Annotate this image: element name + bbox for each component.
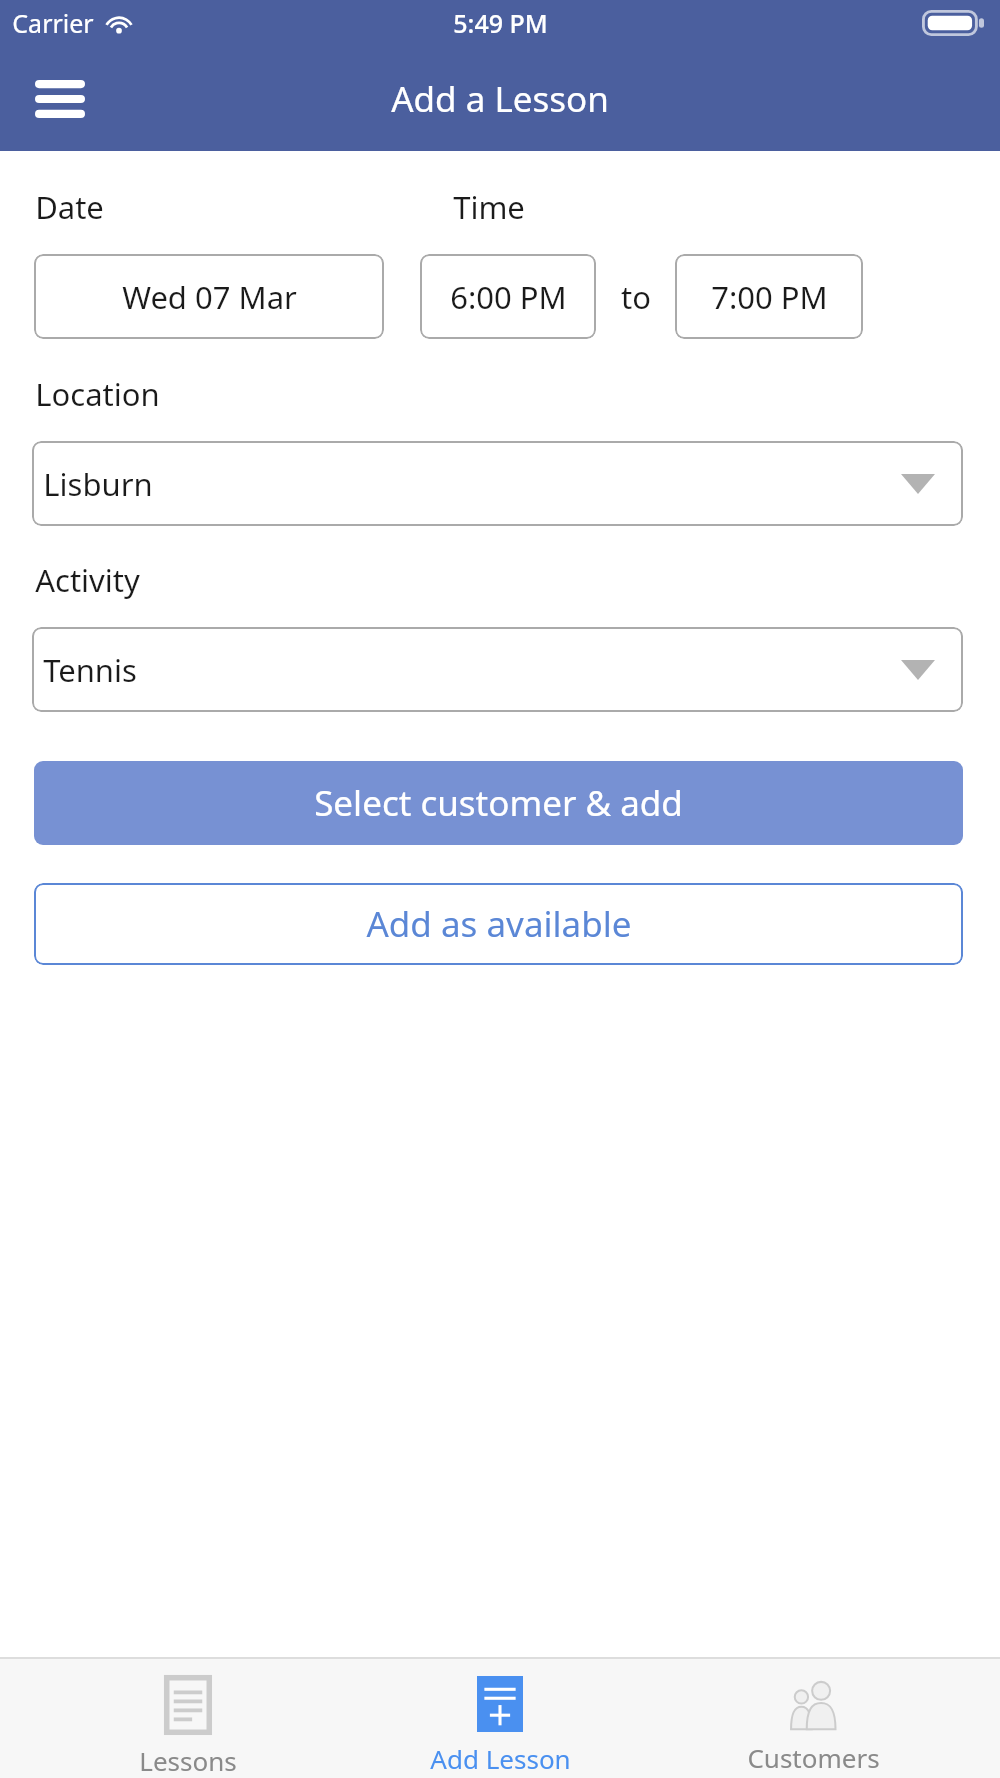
button[interactable]: Add Lesson xyxy=(375,1676,625,1776)
staticText: Date xyxy=(35,186,104,228)
button[interactable]: Customers xyxy=(688,1676,938,1775)
staticText: Carrier xyxy=(12,6,94,40)
staticText: Tennis xyxy=(43,649,137,691)
button[interactable]: Select customer & add xyxy=(34,761,963,845)
staticText: Add a Lesson xyxy=(391,75,609,123)
staticText: to xyxy=(621,276,651,318)
button[interactable]: Tennis xyxy=(32,627,963,712)
button[interactable]: Add as available xyxy=(34,883,963,965)
button[interactable]: Lisburn xyxy=(32,441,963,526)
staticText: Select customer & add xyxy=(314,779,683,827)
staticText: Wed 07 Mar xyxy=(122,276,297,318)
staticText: Add Lesson xyxy=(430,1741,571,1776)
button[interactable]: Lessons xyxy=(63,1676,313,1778)
staticText: 5:49 PM xyxy=(453,6,548,40)
staticText: Time xyxy=(453,186,525,228)
staticText: Lessons xyxy=(139,1743,237,1778)
staticText: Customers xyxy=(747,1740,880,1775)
staticText: Add as available xyxy=(366,900,632,948)
button[interactable]: Wed 07 Mar xyxy=(34,254,384,339)
staticText: 6:00 PM xyxy=(450,276,567,318)
staticText: Lisburn xyxy=(43,463,153,505)
button[interactable]: Menu xyxy=(30,69,90,129)
button[interactable]: 7:00 PM xyxy=(675,254,863,339)
button[interactable]: 6:00 PM xyxy=(420,254,596,339)
staticText: 7:00 PM xyxy=(711,276,828,318)
staticText: Activity xyxy=(35,559,140,601)
staticText: Location xyxy=(35,373,160,415)
